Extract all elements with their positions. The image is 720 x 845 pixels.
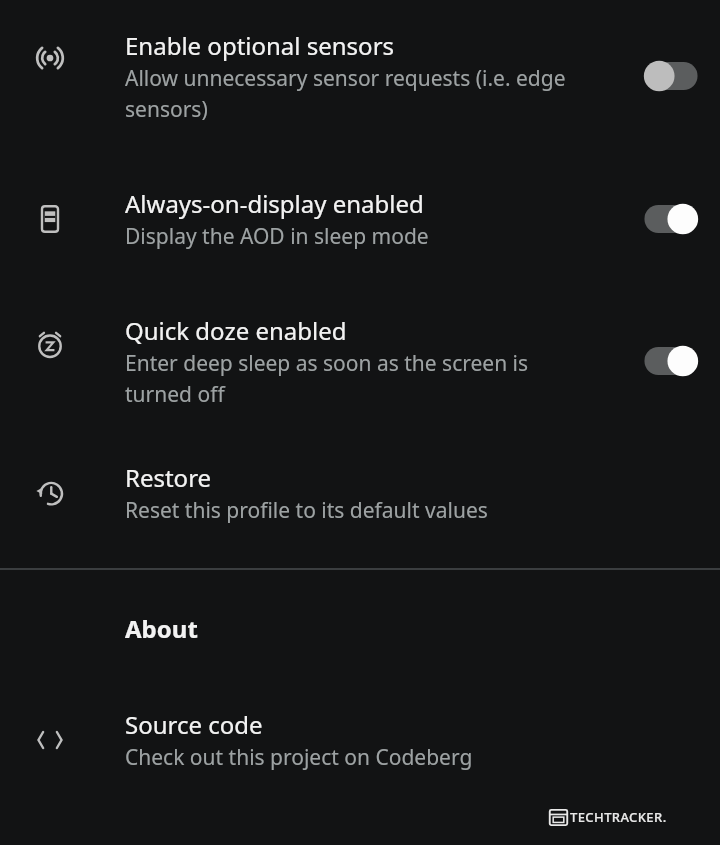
staticText: Check out this project on Codeberg (125, 743, 473, 772)
button[interactable]: Quick doze enabled toggle (633, 337, 709, 385)
other: Quick doze (34, 328, 66, 360)
other: Restore defaults (34, 477, 66, 509)
button[interactable]: Restore defaults (0, 436, 720, 550)
button[interactable]: Enable optional sensors toggle (633, 52, 709, 100)
staticText: TECHTRACKER. (570, 808, 667, 826)
staticText: Restore (125, 461, 212, 494)
button[interactable]: Always on display (0, 152, 720, 286)
button[interactable]: Optional sensors (0, 0, 720, 152)
staticText: Enable optional sensors (125, 29, 395, 62)
staticText: Always-on-display enabled (125, 187, 424, 220)
other: Source code (34, 724, 66, 756)
staticText: Reset this profile to its default values (125, 496, 488, 525)
other: Optional sensors (34, 42, 66, 74)
button[interactable]: Source code (0, 686, 720, 794)
staticText: Quick doze enabled (125, 314, 347, 347)
staticText: Source code (125, 708, 263, 741)
staticText: About (125, 612, 198, 645)
button[interactable]: Always-on-display enabled toggle (633, 195, 709, 243)
staticText: Enter deep sleep as soon as the screen i… (125, 349, 585, 408)
other: Always on display (34, 203, 66, 235)
button[interactable]: Quick doze (0, 286, 720, 436)
staticText: Display the AOD in sleep mode (125, 222, 429, 251)
staticText: Allow unnecessary sensor requests (i.e. … (125, 64, 585, 123)
